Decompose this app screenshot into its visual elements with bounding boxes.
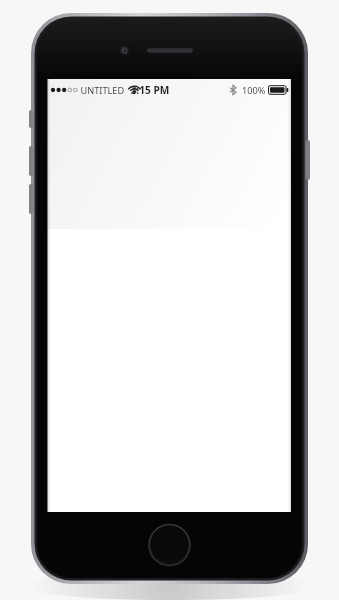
- button[interactable]: Home button: [149, 525, 190, 566]
- button[interactable]: iPhone device mockup, blank white screen: [0, 0, 339, 600]
